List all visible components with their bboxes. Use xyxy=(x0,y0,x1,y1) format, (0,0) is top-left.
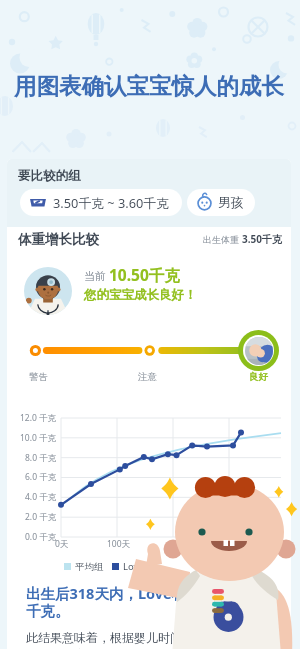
staticText: 3.50千克 ~ 3.60千克 xyxy=(53,194,169,211)
staticText: 此结果意味着，根据婴儿时间的数据，将Love的体重与出生 xyxy=(26,629,274,649)
staticText: 当前 xyxy=(84,268,109,283)
staticText: 您的宝宝成长良好！ xyxy=(84,287,197,303)
staticText: 0.0 千克 xyxy=(25,531,57,543)
staticText: 平均组 xyxy=(75,561,104,573)
staticText: 0天 xyxy=(55,538,69,550)
staticText: 要比较的组 xyxy=(18,168,81,184)
staticText: 10.50千克 xyxy=(109,264,180,285)
staticText: 100天 xyxy=(107,538,131,550)
staticText: 良好 xyxy=(249,371,268,383)
staticText: Love xyxy=(123,560,144,573)
staticText: 2.0 千克 xyxy=(25,511,57,523)
staticText: 出生后318天内，Love将会增长 7.00千克。 xyxy=(26,583,274,620)
staticText: 警告 xyxy=(29,371,48,383)
staticText: 6.0 千克 xyxy=(25,471,57,483)
staticText: 10.0 千克 xyxy=(20,432,57,444)
staticText: 12.0 千克 xyxy=(20,412,57,424)
staticText: 3.50千克 xyxy=(242,232,282,246)
staticText: 8.0 千克 xyxy=(25,452,57,464)
staticText: 体重增长比较 xyxy=(18,231,99,248)
staticText: 出生体重 xyxy=(203,233,242,245)
button[interactable]: 3.50千克 ~ 3.60千克 xyxy=(20,189,182,216)
button[interactable]: 良好 状态 xyxy=(238,330,279,371)
staticText: 用图表确认宝宝惊人的成长 xyxy=(14,72,284,100)
button[interactable]: 男孩 xyxy=(187,189,255,216)
staticText: 男孩 xyxy=(218,195,244,211)
staticText: 注意 xyxy=(138,371,157,383)
staticText: 4.0 千克 xyxy=(25,491,57,503)
